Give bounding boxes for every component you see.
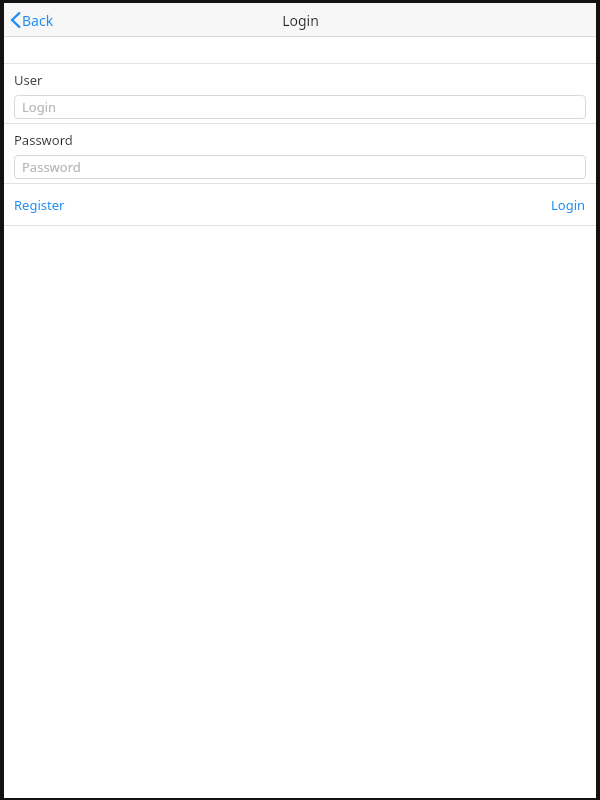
staticText: Back [22, 11, 54, 30]
staticText: Login [551, 196, 586, 214]
staticText: User [14, 71, 43, 89]
staticText: Login [22, 98, 57, 116]
staticText: Register [14, 196, 65, 214]
staticText: Login [282, 11, 319, 30]
staticText: Password [22, 158, 81, 176]
staticText: Password [14, 131, 73, 149]
button[interactable]: Register [4, 184, 75, 225]
button[interactable]: Back [4, 3, 64, 37]
button[interactable]: Password [14, 155, 586, 179]
button[interactable]: Login [541, 184, 596, 225]
button[interactable]: Login [14, 95, 586, 119]
